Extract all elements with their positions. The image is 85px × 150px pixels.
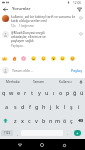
button[interactable]: l xyxy=(61,99,68,113)
staticText: ü xyxy=(80,89,84,96)
button[interactable]: kullanici_adi bir kokteyl tarifi ve sunu… xyxy=(0,13,85,29)
button[interactable]: z xyxy=(11,113,19,127)
staticText: j xyxy=(50,103,52,110)
button[interactable]: ö xyxy=(61,113,68,127)
staticText: a xyxy=(5,103,9,110)
staticText: , xyxy=(17,131,18,136)
staticText: Tamam xyxy=(33,80,45,84)
button[interactable]: i xyxy=(75,99,82,113)
button[interactable]: q xyxy=(0,85,8,99)
button[interactable]: Recents xyxy=(59,140,69,150)
button[interactable]: Merhaba xyxy=(0,78,26,85)
button[interactable]: Emoji xyxy=(50,55,57,62)
staticText: q xyxy=(2,89,6,96)
button[interactable]: t xyxy=(29,85,36,99)
staticText: m xyxy=(55,117,61,124)
button[interactable]: ?123 xyxy=(1,130,13,136)
button[interactable]: e xyxy=(15,85,22,99)
button[interactable]: p xyxy=(64,85,71,99)
button[interactable]: b xyxy=(40,113,47,127)
staticText: Kullanıcı xyxy=(59,80,72,84)
button[interactable]: f xyxy=(26,99,33,113)
button[interactable]: ç xyxy=(68,113,75,127)
button[interactable]: Filter xyxy=(75,5,83,13)
button[interactable]: n xyxy=(47,113,54,127)
button[interactable]: x xyxy=(19,113,26,127)
button[interactable]: Voice input xyxy=(78,79,84,85)
staticText: 12:06 xyxy=(73,1,82,5)
button[interactable]: Shift xyxy=(0,113,11,127)
staticText: b xyxy=(42,117,46,124)
staticText: 1 beğenme xyxy=(19,24,34,28)
staticText: k xyxy=(56,103,60,110)
staticText: ö xyxy=(63,117,67,124)
staticText: i xyxy=(78,103,80,110)
staticText: w xyxy=(9,89,14,96)
staticText: h xyxy=(42,103,46,110)
button[interactable]: , xyxy=(13,130,21,136)
staticText: Yorumlar xyxy=(12,6,31,12)
staticText: 12s xyxy=(11,24,16,28)
staticText: Merhaba xyxy=(6,80,20,84)
staticText: kullanici_adi bir kokteyl tarifi ve sunu… xyxy=(11,15,77,23)
button[interactable]: a xyxy=(3,99,11,113)
button[interactable]: d xyxy=(19,99,26,113)
staticText: ç xyxy=(70,117,73,124)
button[interactable]: ş xyxy=(68,99,75,113)
button[interactable]: Send xyxy=(74,130,81,136)
button[interactable]: v xyxy=(33,113,40,127)
button[interactable]: Paylaş xyxy=(70,67,83,74)
button[interactable]: @MuzikDunyasi sevgili arkadaşlar, elleri… xyxy=(0,29,85,49)
button[interactable]: Like xyxy=(78,31,84,37)
button[interactable]: c xyxy=(26,113,33,127)
button[interactable]: Backspace xyxy=(75,113,85,127)
staticText: l xyxy=(64,103,66,110)
button[interactable]: Blossom emoji xyxy=(20,55,27,62)
button[interactable]: r xyxy=(22,85,29,99)
staticText: s xyxy=(14,103,17,110)
staticText: ?123 xyxy=(4,131,11,135)
button[interactable]: ğ xyxy=(71,85,78,99)
button[interactable]: ı xyxy=(50,85,57,99)
button[interactable]: . xyxy=(63,130,71,136)
button[interactable]: Home xyxy=(37,140,47,150)
button[interactable]: o xyxy=(57,85,64,99)
staticText: e xyxy=(17,89,21,96)
staticText: p xyxy=(66,89,70,96)
button[interactable]: ü xyxy=(78,85,85,99)
staticText: ş xyxy=(70,103,73,110)
staticText: c xyxy=(28,117,31,124)
staticText: y xyxy=(38,89,41,96)
staticText: Paylaşan... xyxy=(11,44,25,48)
button[interactable]: Emoji xyxy=(69,55,76,62)
button[interactable]: y xyxy=(36,85,43,99)
button[interactable]: j xyxy=(47,99,54,113)
staticText: t xyxy=(31,89,34,96)
button[interactable]: s xyxy=(11,99,19,113)
button[interactable]: Back xyxy=(1,5,9,13)
button[interactable]: Emoji xyxy=(59,55,66,62)
staticText: g xyxy=(35,103,39,110)
button[interactable]: Crown emoji xyxy=(1,55,8,62)
button[interactable]: Back xyxy=(15,140,25,150)
staticText: Paylaş xyxy=(71,68,82,73)
button[interactable]: Tamam xyxy=(26,78,52,85)
button[interactable]: u xyxy=(43,85,50,99)
button[interactable]: Like xyxy=(78,15,84,21)
staticText: z xyxy=(14,117,17,124)
staticText: x xyxy=(21,117,24,124)
button[interactable]: Fire emoji xyxy=(11,55,18,62)
staticText: Yorum ekle... xyxy=(12,68,33,73)
button[interactable]: w xyxy=(8,85,15,99)
button[interactable]: k xyxy=(54,99,61,113)
staticText: . xyxy=(67,131,68,136)
button[interactable]: Emoji xyxy=(30,55,37,62)
button[interactable]: Emoji xyxy=(40,55,47,62)
button[interactable]: g xyxy=(33,99,40,113)
button[interactable]: h xyxy=(40,99,47,113)
staticText: n xyxy=(49,117,53,124)
button[interactable]: Kullanıcı xyxy=(52,78,78,85)
button[interactable]: m xyxy=(54,113,61,127)
staticText: v xyxy=(35,117,38,124)
